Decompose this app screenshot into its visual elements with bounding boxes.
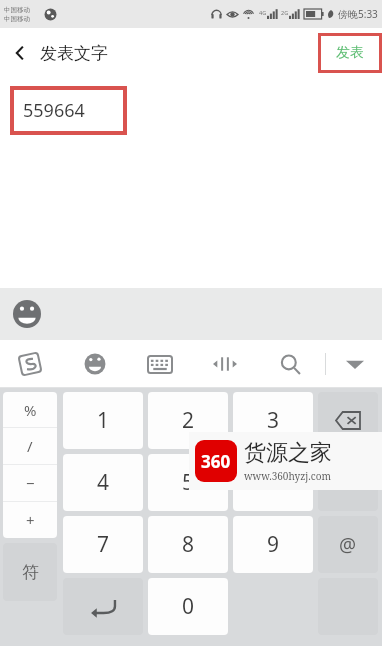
button[interactable]: Emoji (10, 297, 44, 331)
button[interactable]: 0 (148, 578, 228, 635)
button[interactable] (318, 392, 378, 449)
staticText: 6 (267, 468, 280, 497)
staticText: 发表文字 (40, 43, 108, 64)
staticText: 傍晚5:33 (338, 7, 378, 21)
button[interactable]: 6 (233, 454, 313, 511)
staticText: www.360hyzj.com (244, 469, 331, 483)
staticText: 5 (182, 468, 195, 497)
staticText: 1 (97, 406, 110, 435)
button[interactable]: . (318, 454, 378, 511)
button[interactable]: Move cursor (203, 342, 247, 386)
staticText: / (27, 436, 33, 456)
staticText: 8 (182, 530, 195, 559)
button[interactable]: 1 (63, 392, 143, 449)
button[interactable]: 5 (148, 454, 228, 511)
staticText: % (24, 400, 37, 420)
button[interactable]: 发表 (318, 33, 382, 73)
staticText: − (26, 473, 35, 493)
staticText: @ (339, 532, 357, 558)
staticText: 2G (281, 9, 289, 16)
button[interactable]: Keyboard layout (138, 342, 182, 386)
button[interactable]: Hide keyboard (333, 342, 377, 386)
staticText: 360 (201, 450, 231, 473)
button[interactable]: 2 (148, 392, 228, 449)
button[interactable]: + (3, 502, 57, 538)
button[interactable]: Back (0, 33, 40, 73)
staticText: 货源之家 (244, 439, 332, 467)
staticText: 0 (182, 592, 195, 621)
staticText: 发表 (336, 44, 364, 62)
button[interactable]: 8 (148, 516, 228, 573)
button[interactable]: 9 (233, 516, 313, 573)
button[interactable]: / (3, 428, 57, 464)
button[interactable]: 7 (63, 516, 143, 573)
staticText: 中国移动 (4, 15, 30, 23)
staticText: 符 (22, 562, 39, 583)
button[interactable]: 3 (233, 392, 313, 449)
staticText: + (26, 510, 35, 530)
button[interactable]: @ (318, 516, 378, 573)
staticText: 中国移动 (4, 6, 30, 14)
staticText: 3 (267, 406, 280, 435)
button[interactable] (63, 578, 143, 635)
staticText: 4 (97, 468, 110, 497)
button[interactable]: % (3, 392, 57, 427)
button[interactable]: − (3, 465, 57, 501)
staticText: 9 (267, 530, 280, 559)
button[interactable]: 4 (63, 454, 143, 511)
staticText: 4G (259, 9, 267, 16)
button[interactable]: Sogou input (8, 342, 52, 386)
button[interactable]: Search (268, 342, 312, 386)
staticText: . (345, 468, 351, 497)
button[interactable]: 符 (3, 543, 57, 601)
staticText: 559664 (23, 98, 85, 123)
button[interactable]: Emoticons (73, 342, 117, 386)
staticText: 7 (97, 530, 110, 559)
staticText: 2 (182, 406, 195, 435)
